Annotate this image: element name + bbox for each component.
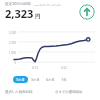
staticText: 6/22 — [61, 66, 67, 70]
staticText: 選択した残高総額 — [5, 90, 33, 94]
staticText: 3,000 — [8, 31, 16, 35]
button[interactable]: 3か月 — [28, 76, 43, 83]
button[interactable]: 6か月 — [43, 76, 58, 83]
staticText: 1年 — [61, 77, 67, 82]
staticText: 6か月 — [46, 77, 55, 82]
staticText: 2024年6月1日〜6月30日 — [34, 3, 61, 6]
button[interactable]: 1か月 — [13, 76, 28, 83]
staticText: 0 — [14, 61, 16, 65]
staticText: 円 — [35, 13, 41, 20]
button[interactable]: Increase — [79, 4, 95, 20]
button[interactable]: 1年 — [58, 76, 70, 83]
staticText: 2,000 — [8, 41, 16, 45]
staticText: 直近30日の総額 — [5, 1, 31, 6]
staticText: 6/14 — [32, 66, 38, 70]
staticText: 今までの運用損益 — [55, 90, 83, 94]
staticText: 2,323 — [5, 6, 34, 21]
staticText: 3か月 — [31, 77, 40, 82]
staticText: 1か月 — [16, 77, 25, 82]
staticText: 1,000 — [8, 51, 16, 55]
